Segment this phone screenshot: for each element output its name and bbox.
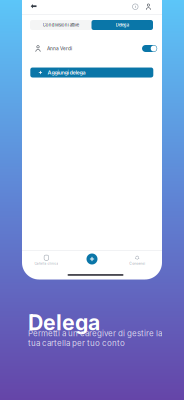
staticText: Permetti a un caregiver di gestire la tu… <box>28 328 162 348</box>
staticText: Consensi <box>129 261 145 266</box>
staticText: Delega <box>116 22 129 27</box>
staticText: Cartella clinica <box>34 262 58 265</box>
button[interactable]: Condivisioni attive <box>30 20 91 30</box>
button[interactable]: Indietro <box>28 0 40 12</box>
button[interactable]: Aggiungi delega <box>30 67 153 77</box>
staticText: Delega <box>28 310 100 335</box>
button[interactable]: Delega <box>91 20 153 30</box>
button[interactable]: Aggiungi <box>79 252 105 266</box>
button[interactable]: Profilo <box>143 1 154 12</box>
button[interactable]: Consensi <box>114 253 160 267</box>
button[interactable]: Cartella clinica <box>23 253 69 267</box>
staticText: Anna Verdi <box>47 46 72 51</box>
button[interactable]: Anna Verdi <box>30 42 157 54</box>
staticText: Aggiungi delega <box>47 69 85 76</box>
staticText: Condivisioni attive <box>43 22 79 28</box>
button[interactable]: Informazioni <box>130 1 141 12</box>
